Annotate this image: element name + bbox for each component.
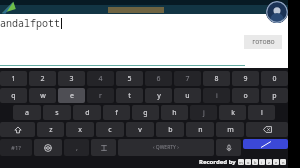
button[interactable]: 2 <box>29 71 56 86</box>
button[interactable]: 1 <box>0 71 27 86</box>
staticText: 2 <box>40 74 45 84</box>
button[interactable]: c <box>96 122 124 137</box>
staticText: l <box>261 108 263 118</box>
staticText: m <box>239 160 243 165</box>
staticText: j <box>203 108 205 118</box>
button[interactable]: n <box>186 122 214 137</box>
staticText: m <box>227 125 234 135</box>
staticText: g <box>143 108 148 118</box>
button[interactable]: Change language <box>34 139 62 156</box>
staticText: b <box>254 160 257 165</box>
other: App logo <box>1 1 21 14</box>
button[interactable]: 6 <box>145 71 172 86</box>
staticText: f <box>115 108 118 118</box>
staticText: t <box>128 91 131 101</box>
staticText: w <box>40 91 46 101</box>
staticText: #1? <box>11 144 21 152</box>
button[interactable]: Keyboard settings <box>91 139 116 156</box>
staticText: b <box>168 125 173 135</box>
button[interactable]: s <box>43 105 71 120</box>
button[interactable]: v <box>126 122 154 137</box>
staticText: 0 <box>272 74 277 84</box>
button[interactable]: 5 <box>116 71 143 86</box>
staticText: , <box>76 143 78 153</box>
staticText: i <box>216 91 218 101</box>
staticText: o <box>243 91 248 101</box>
staticText: q <box>11 91 16 101</box>
staticText: 4 <box>98 74 103 84</box>
staticText: 3 <box>69 74 74 84</box>
staticText: andalfpott <box>0 16 60 30</box>
button[interactable]: Voice input <box>216 139 241 156</box>
button[interactable]: Backspace <box>246 122 288 137</box>
button[interactable]: g <box>132 105 159 120</box>
button[interactable]: 8 <box>203 71 230 86</box>
button[interactable]: m <box>216 122 244 137</box>
button[interactable]: d <box>73 105 101 120</box>
button[interactable]: w <box>29 88 56 103</box>
button[interactable]: p <box>261 88 288 103</box>
button[interactable]: Shift <box>0 122 35 137</box>
button[interactable]: ‹ QWERTY › <box>118 139 214 156</box>
button[interactable]: Enter <box>243 139 288 156</box>
staticText: e <box>70 91 74 101</box>
button[interactable]: b <box>156 122 184 137</box>
button[interactable]: r <box>87 88 114 103</box>
button[interactable]: Account <box>266 1 288 23</box>
button[interactable]: h <box>161 105 188 120</box>
button[interactable]: u <box>174 88 201 103</box>
staticText: e <box>275 160 278 165</box>
staticText: c <box>108 125 112 135</box>
staticText: n <box>198 125 203 135</box>
button[interactable]: , <box>64 139 89 156</box>
button[interactable]: 9 <box>232 71 259 86</box>
button[interactable]: l <box>248 105 275 120</box>
staticText: ‹ QWERTY › <box>153 144 179 151</box>
button[interactable]: j <box>190 105 217 120</box>
staticText: 5 <box>127 74 132 84</box>
staticText: d <box>85 108 90 118</box>
button[interactable]: 7 <box>174 71 201 86</box>
staticText: 7 <box>185 74 190 84</box>
staticText: u <box>185 91 190 101</box>
button[interactable]: i <box>203 88 230 103</box>
staticText: s <box>55 108 59 118</box>
staticText: v <box>138 125 142 135</box>
button[interactable]: 0 <box>261 71 288 86</box>
staticText: n <box>282 160 285 165</box>
button[interactable]: t <box>116 88 143 103</box>
button[interactable]: готово <box>244 35 282 49</box>
staticText: 8 <box>214 74 219 84</box>
button[interactable]: 3 <box>58 71 85 86</box>
staticText: i <box>261 160 263 165</box>
button[interactable]: e <box>58 88 85 103</box>
button[interactable]: f <box>103 105 130 120</box>
staticText: x <box>78 125 82 135</box>
staticText: готово <box>252 37 275 47</box>
button[interactable]: x <box>66 122 94 137</box>
button[interactable]: 4 <box>87 71 114 86</box>
button[interactable]: k <box>219 105 246 120</box>
button[interactable]: o <box>232 88 259 103</box>
button[interactable]: #1? <box>0 139 32 156</box>
staticText: Recorded by <box>199 158 236 166</box>
button[interactable]: q <box>0 88 27 103</box>
staticText: z <box>49 125 53 135</box>
staticText: r <box>99 91 102 101</box>
staticText: h <box>172 108 177 118</box>
staticText: 9 <box>243 74 248 84</box>
staticText: 1 <box>11 74 16 84</box>
button[interactable]: a <box>13 105 41 120</box>
staticText: o <box>247 160 250 165</box>
staticText: z <box>268 160 270 165</box>
staticText: 6 <box>156 74 161 84</box>
button[interactable]: y <box>145 88 172 103</box>
button[interactable]: z <box>37 122 64 137</box>
button[interactable]: andalfpott <box>0 16 288 30</box>
staticText: k <box>231 108 235 118</box>
staticText: a <box>25 108 29 118</box>
staticText: p <box>272 91 277 101</box>
staticText: y <box>157 91 161 101</box>
